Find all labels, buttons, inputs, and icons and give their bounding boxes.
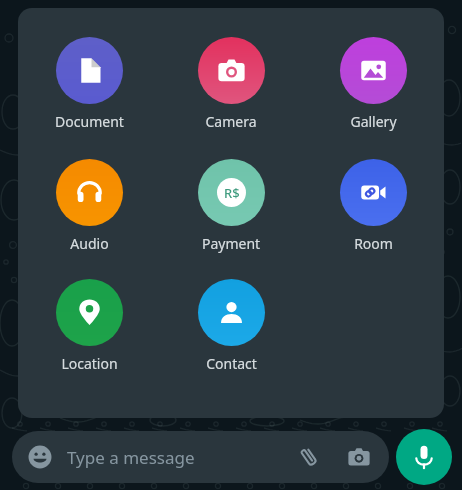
staticText: Location xyxy=(61,354,118,373)
staticText: Document xyxy=(55,112,124,131)
button[interactable]: Emoji xyxy=(25,442,55,472)
staticText: Gallery xyxy=(350,112,397,131)
staticText: Payment xyxy=(202,234,261,253)
staticText: Contact xyxy=(206,354,257,373)
button[interactable]: Location xyxy=(56,275,123,373)
staticText: Camera xyxy=(205,112,257,131)
staticText: Room xyxy=(354,234,393,253)
button[interactable]: Record voice message xyxy=(396,429,452,485)
button[interactable]: Camera xyxy=(342,440,376,474)
button[interactable]: Contact xyxy=(198,275,265,373)
button[interactable]: Audio xyxy=(56,155,123,253)
button[interactable]: Document xyxy=(18,33,160,131)
button[interactable]: R$ xyxy=(198,155,265,253)
staticText: R$ xyxy=(224,184,240,202)
button[interactable]: Room xyxy=(340,155,407,253)
staticText: Audio xyxy=(70,234,109,253)
button[interactable]: Camera xyxy=(160,33,302,131)
button[interactable]: Emoji xyxy=(12,431,389,483)
button[interactable]: Attach xyxy=(292,440,326,474)
staticText: Type a message xyxy=(67,446,292,469)
button[interactable]: Gallery xyxy=(302,33,444,131)
